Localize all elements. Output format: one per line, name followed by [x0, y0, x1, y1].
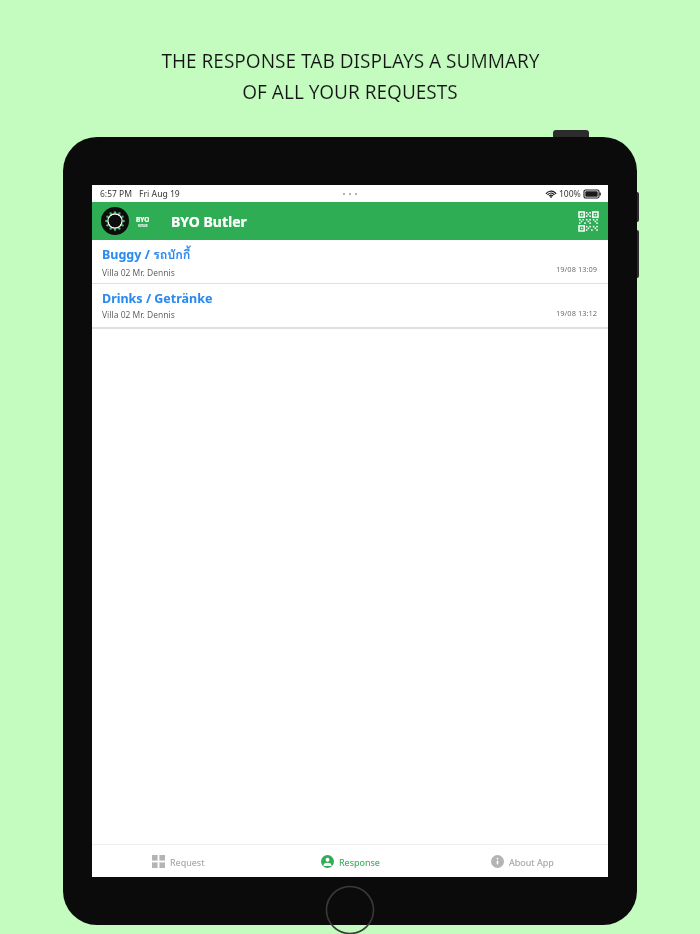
button[interactable]: Scan QR code [577, 210, 599, 232]
button[interactable]: Request [92, 845, 264, 877]
staticText: 19/08 13:09 [556, 264, 598, 274]
button[interactable]: Drinks / Getränke [92, 284, 608, 328]
button[interactable]: Response [264, 845, 436, 877]
staticText: THE RESPONSE TAB DISPLAYS A SUMMARY [161, 48, 540, 74]
staticText: Request [170, 856, 205, 868]
staticText: 6:57 PM [100, 188, 133, 200]
staticText: Villa 02 Mr. Dennis [102, 309, 175, 321]
staticText: About App [509, 856, 554, 868]
staticText: Fri Aug 19 [139, 188, 180, 200]
other: Home [325, 885, 375, 934]
staticText: Drinks / Getränke [102, 290, 213, 307]
staticText: 100% [559, 188, 581, 200]
staticText: Response [339, 856, 380, 868]
staticText: BUTLER [138, 224, 148, 228]
staticText: OF ALL YOUR REQUESTS [242, 79, 458, 105]
staticText: BYO Butler [171, 212, 247, 231]
button[interactable]: About App [436, 845, 608, 877]
staticText: Villa 02 Mr. Dennis [102, 267, 175, 279]
button[interactable]: Buggy / รถบักกี้ [92, 240, 608, 284]
staticText: 19/08 13:12 [556, 308, 598, 318]
staticText: Buggy / รถบักกี้ [102, 245, 191, 265]
staticText: BYO [136, 215, 150, 224]
